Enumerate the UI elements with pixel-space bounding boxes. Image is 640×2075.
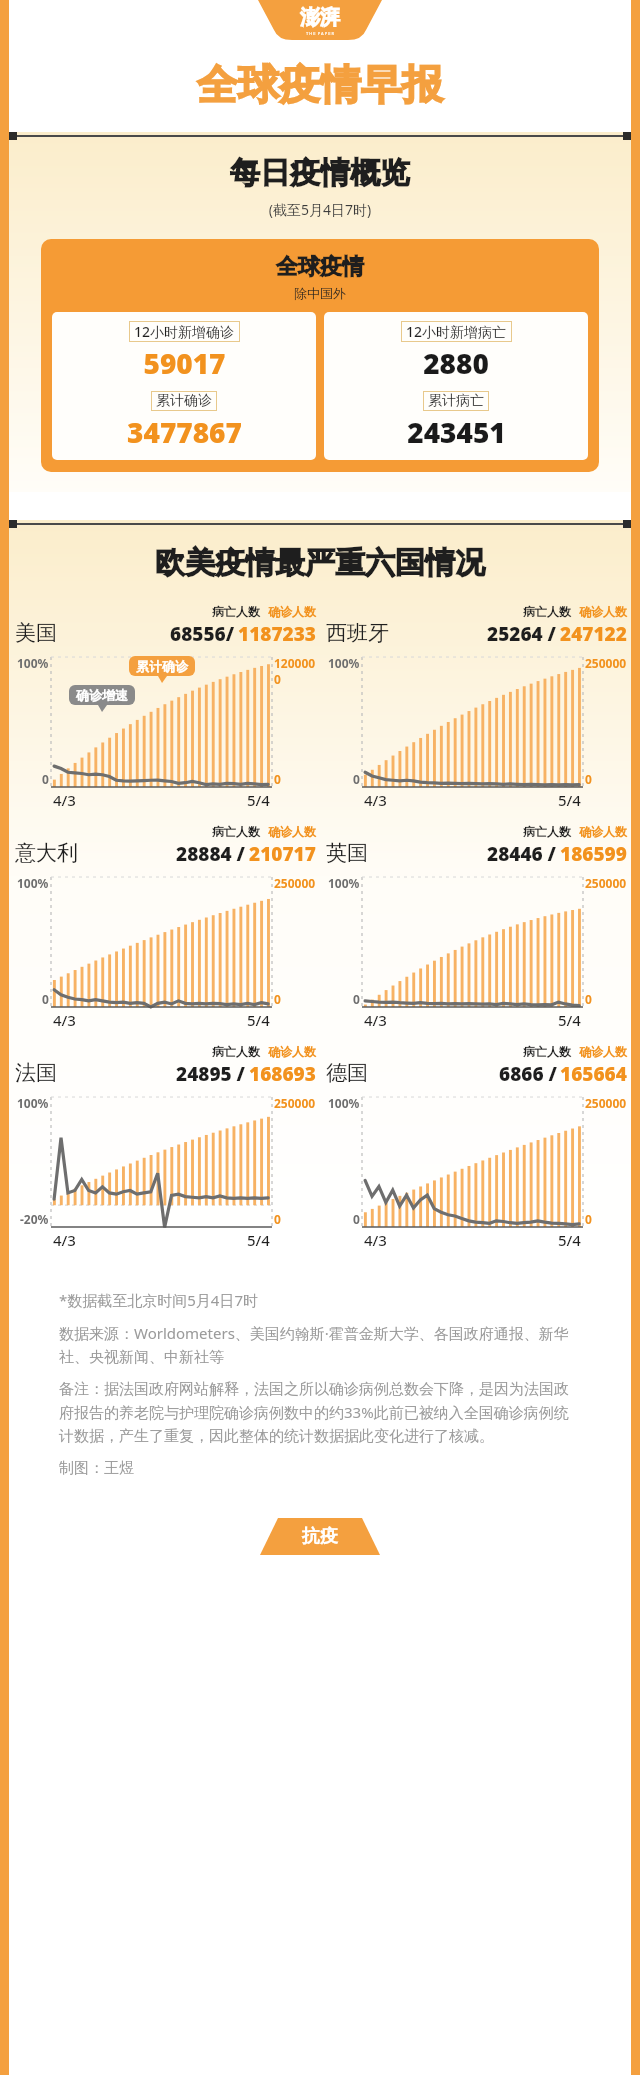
staticText: 确诊人数 [579,604,627,619]
staticText: 确诊人数 [268,824,316,839]
staticText: 165664 [560,1061,627,1087]
staticText: 68556/ [170,621,235,647]
staticText: 意大利 [15,840,78,866]
staticText: 病亡人数 [523,824,571,839]
staticText: 0 [585,991,592,1007]
button[interactable]: 法国 [9,1044,320,1250]
button[interactable]: 抗疫 [260,1518,380,1555]
staticText: 6866 / [499,1061,557,1087]
staticText: 英国 [326,840,368,866]
staticText: 0 [353,1211,360,1227]
staticText: 累计确诊 [156,392,212,410]
staticText: 250000 [585,1095,627,1111]
staticText: T H E P A P E R [306,31,334,36]
staticText: 250000 [274,875,316,891]
staticText: 制图：王煜 [59,1459,134,1478]
button[interactable]: 美国 [9,604,320,810]
button[interactable]: The Paper logo [258,0,382,40]
staticText: *数据截至北京时间5月4日7时 [59,1290,259,1310]
staticText: 243451 [407,413,506,451]
staticText: 确诊人数 [268,1044,316,1059]
staticText: 5/4 [247,1010,270,1030]
staticText: 5/4 [558,1010,581,1030]
staticText: 250000 [585,875,627,891]
staticText: 100% [328,875,360,891]
staticText: 1200000 [274,655,320,687]
staticText: 100% [17,1095,49,1111]
staticText: 病亡人数 [212,604,260,619]
staticText: 12小时新增病亡 [406,322,507,341]
staticText: 2880 [423,344,489,382]
staticText: 0 [585,771,592,787]
staticText: 病亡人数 [523,1044,571,1059]
staticText: 0 [42,771,49,787]
staticText: 除中国外 [41,285,599,301]
staticText: 澎湃 [300,5,340,30]
staticText: 累计病亡 [428,392,484,410]
staticText: 西班牙 [326,620,389,646]
staticText: 累计确诊 [136,658,188,674]
staticText: 186599 [560,841,627,867]
staticText: 0 [274,771,281,787]
button[interactable]: 西班牙 [320,604,631,810]
staticText: 每日疫情概览 [9,154,631,192]
button[interactable]: 12小时新增确诊 [52,312,316,460]
staticText: 5/4 [247,790,270,810]
staticText: 250000 [274,1095,316,1111]
staticText: 确诊人数 [579,1044,627,1059]
staticText: 全球疫情早报 [197,60,443,112]
staticText: 5/4 [247,1230,270,1250]
staticText: 病亡人数 [212,824,260,839]
staticText: 0 [42,991,49,1007]
staticText: 25264 / [487,621,557,647]
staticText: 欧美疫情最严重六国情况 [9,544,631,582]
staticText: 美国 [15,620,57,646]
staticText: 1187233 [238,621,316,647]
button[interactable]: 英国 [320,824,631,1030]
staticText: 100% [328,1095,360,1111]
staticText: -20% [20,1211,49,1227]
button[interactable]: 意大利 [9,824,320,1030]
staticText: 210717 [249,841,316,867]
staticText: 250000 [585,655,627,671]
staticText: 4/3 [364,790,387,810]
staticText: 4/3 [53,1230,76,1250]
staticText: 0 [274,1211,281,1227]
staticText: 全球疫情 [41,253,599,281]
staticText: 0 [585,1211,592,1227]
staticText: 确诊人数 [579,824,627,839]
staticText: 德国 [326,1060,368,1086]
button[interactable]: 全球疫情 [41,239,599,472]
staticText: 4/3 [53,790,76,810]
staticText: 4/3 [364,1010,387,1030]
staticText: 28446 / [487,841,557,867]
staticText: 5/4 [558,790,581,810]
staticText: 12小时新增确诊 [134,322,235,341]
staticText: 59017 [143,344,226,382]
staticText: 备注：据法国政府网站解释，法国之所以确诊病例总数会下降，是因为法国政府报告的养老… [59,1380,581,1446]
staticText: 法国 [15,1060,57,1086]
staticText: 5/4 [558,1230,581,1250]
staticText: 100% [17,655,49,671]
button[interactable]: 12小时新增病亡 [324,312,588,460]
staticText: 100% [17,875,49,891]
staticText: 0 [274,991,281,1007]
staticText: 4/3 [53,1010,76,1030]
staticText: 100% [328,655,360,671]
staticText: 168693 [249,1061,316,1087]
staticText: 抗疫 [302,1525,338,1548]
staticText: 3477867 [127,413,242,451]
staticText: 确诊增速 [76,687,128,703]
staticText: 4/3 [364,1230,387,1250]
staticText: 确诊人数 [268,604,316,619]
staticText: 247122 [560,621,627,647]
staticText: 28884 / [176,841,246,867]
staticText: 数据来源：Worldometers、美国约翰斯·霍普金斯大学、各国政府通报、新华… [59,1323,581,1367]
staticText: (截至5月4日7时) [9,200,631,219]
staticText: 0 [353,771,360,787]
staticText: 0 [353,991,360,1007]
button[interactable]: 德国 [320,1044,631,1250]
staticText: 24895 / [176,1061,246,1087]
staticText: 病亡人数 [212,1044,260,1059]
staticText: 病亡人数 [523,604,571,619]
